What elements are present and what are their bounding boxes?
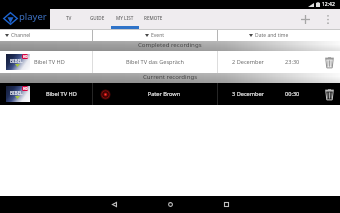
staticText: 2 December [232, 58, 264, 66]
staticText: 00:30 [285, 90, 300, 98]
button[interactable]: Event [93, 30, 217, 41]
staticText: 23:30 [285, 58, 300, 66]
button[interactable]: Delete [321, 86, 337, 102]
staticText: Date and time [255, 32, 289, 39]
staticText: player [19, 10, 47, 23]
staticText: BIBEL [10, 90, 23, 96]
other: Delete [325, 89, 334, 100]
staticText: Completed recordings [138, 40, 202, 48]
button[interactable]: Back [108, 196, 121, 213]
staticText: Channel [11, 32, 31, 39]
staticText: Bibel TV das Gespräch [93, 58, 217, 66]
button[interactable]: MY LIST [111, 9, 139, 29]
button[interactable]: Add [297, 11, 313, 27]
staticText: Event [151, 32, 165, 39]
button[interactable]: BIBEL [0, 51, 340, 73]
button[interactable]: TV [55, 9, 83, 29]
button[interactable]: GUIDE [83, 9, 111, 29]
staticText: HD [23, 55, 28, 59]
button[interactable]: Home [164, 196, 177, 213]
button[interactable]: Delete [321, 54, 337, 70]
button[interactable]: player [0, 4, 50, 33]
staticText: GUIDE [90, 15, 105, 21]
staticText: Bibel TV HD [34, 58, 65, 66]
staticText: Pater Brown [102, 90, 226, 98]
button[interactable]: More options [320, 11, 336, 27]
staticText: 12:42 [322, 1, 335, 8]
staticText: 3 December [232, 90, 264, 98]
button[interactable]: Channel [0, 30, 92, 41]
button[interactable]: Recent apps [220, 196, 233, 213]
staticText: Bibel TV HD [46, 90, 77, 98]
staticText: Current recordings [143, 72, 198, 80]
button[interactable]: BIBEL [0, 83, 340, 105]
staticText: TV [66, 15, 72, 21]
staticText: REMOTE [144, 15, 163, 21]
staticText: HD [23, 87, 28, 91]
other: Delete [325, 57, 334, 68]
button[interactable]: REMOTE [139, 9, 167, 29]
button[interactable]: Date and time [218, 30, 340, 41]
staticText: BIBEL [10, 58, 23, 64]
staticText: MY LIST [116, 15, 134, 21]
